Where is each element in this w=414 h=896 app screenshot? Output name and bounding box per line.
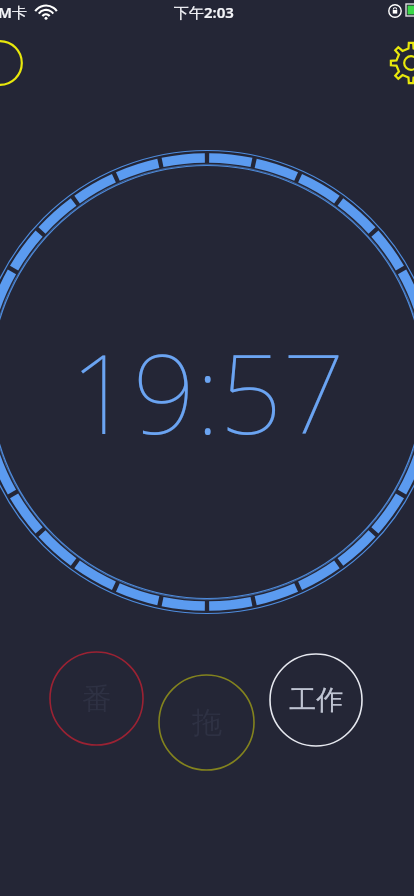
button[interactable]: Timer preset bbox=[0, 40, 23, 86]
button[interactable]: Settings bbox=[389, 41, 414, 85]
button[interactable]: Pomodoro tag bbox=[49, 651, 144, 746]
button[interactable]: Procrastinate tag bbox=[158, 674, 255, 771]
button[interactable]: Work tag bbox=[269, 653, 363, 747]
staticText: 拖 bbox=[192, 704, 222, 742]
staticText: 19:57 bbox=[70, 316, 345, 466]
staticText: 工作 bbox=[289, 683, 343, 717]
staticText: 下午2:03 bbox=[174, 2, 234, 22]
staticText: M卡 bbox=[0, 2, 27, 22]
staticText: 番 bbox=[82, 680, 112, 718]
